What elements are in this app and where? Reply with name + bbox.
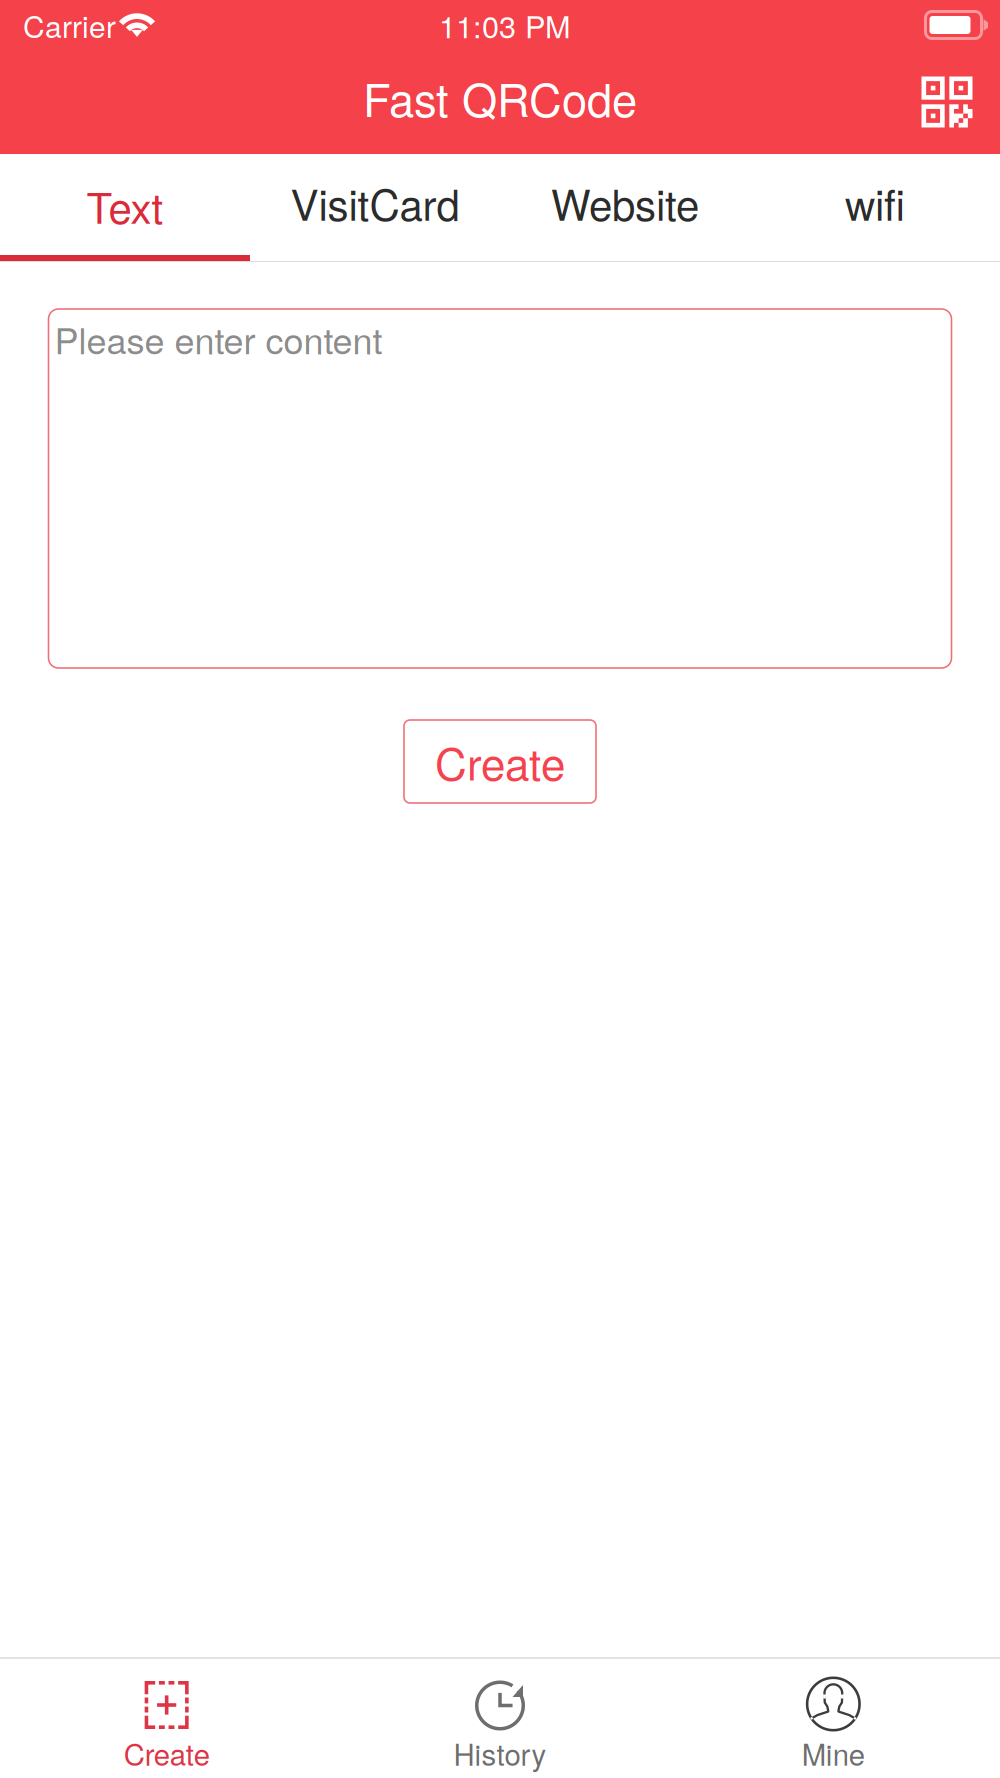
button[interactable]: Mine (667, 1657, 1000, 1778)
staticText: Create (435, 730, 565, 793)
staticText: Text (86, 175, 163, 235)
button[interactable]: Create (404, 720, 596, 803)
staticText: VisitCard (290, 172, 459, 232)
staticText: Create (124, 1732, 210, 1774)
button[interactable]: Scan QR code (902, 57, 1000, 147)
button[interactable]: VisitCard (250, 154, 500, 262)
staticText: Website (551, 172, 699, 232)
staticText: History (453, 1732, 546, 1774)
button[interactable]: Website (500, 154, 750, 262)
button[interactable]: History (333, 1657, 667, 1778)
staticText: wifi (845, 172, 905, 232)
staticText: Carrier (23, 3, 116, 46)
staticText: Mine (802, 1732, 865, 1774)
staticText: Fast QRCode (363, 65, 637, 130)
staticText: 11:03 PM (439, 3, 571, 47)
button[interactable]: Create (0, 1657, 333, 1778)
button[interactable]: wifi (750, 154, 1000, 262)
button[interactable]: Text (0, 154, 250, 262)
staticText: Please enter content (54, 313, 382, 365)
